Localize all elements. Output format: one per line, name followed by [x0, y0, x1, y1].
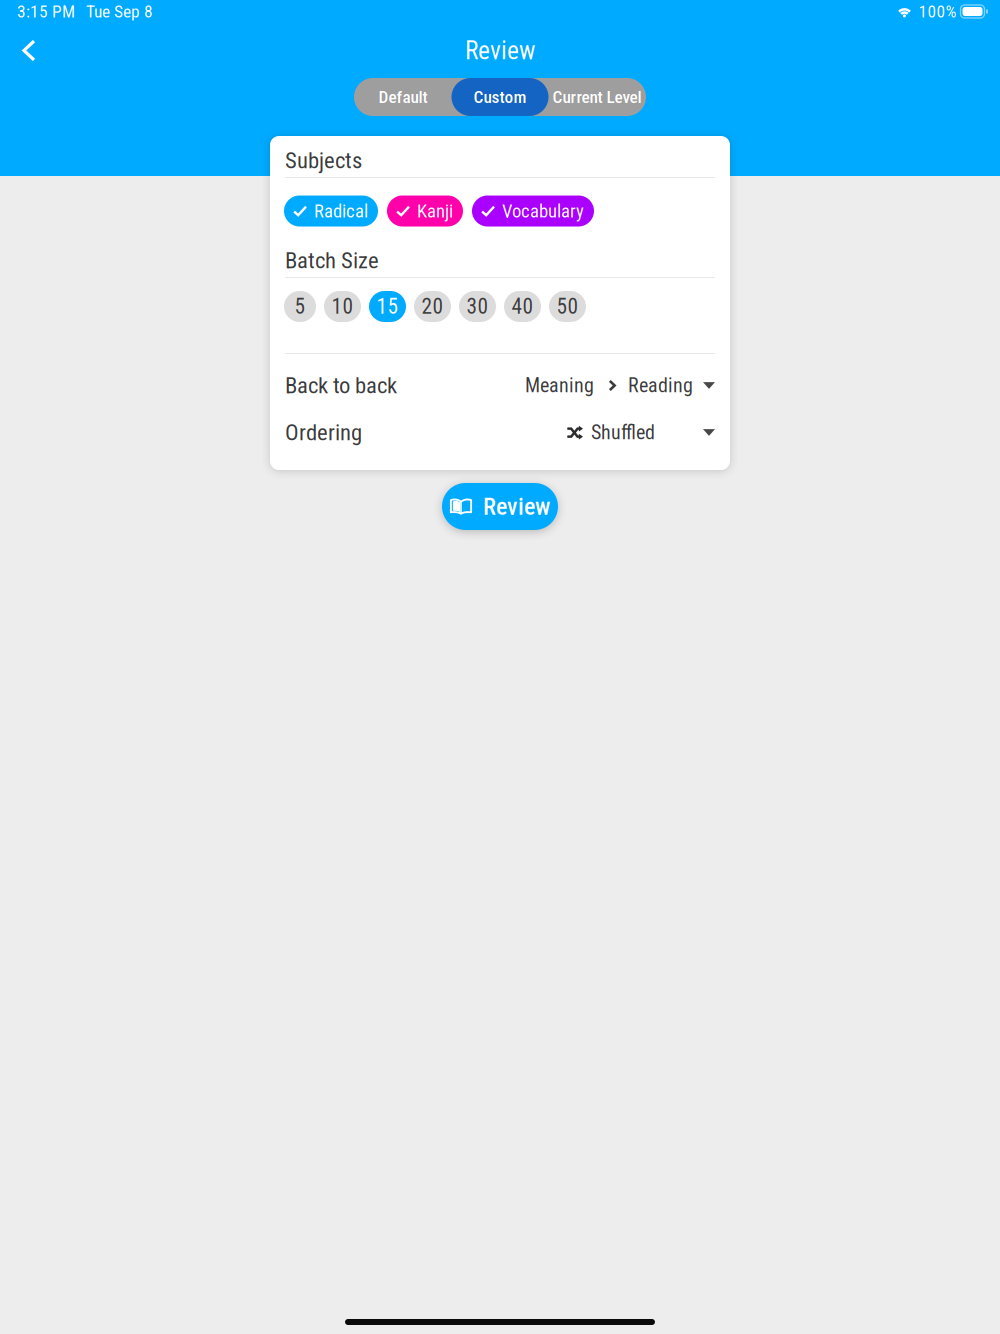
staticText: Custom [473, 87, 526, 107]
staticText: Review [465, 36, 535, 65]
staticText: Current Level [552, 87, 641, 107]
staticText: Kanji [417, 200, 453, 222]
button[interactable]: Radical [284, 195, 378, 226]
staticText: 50 [556, 294, 578, 319]
button[interactable]: 20 [414, 291, 451, 322]
button[interactable]: 15 [369, 291, 406, 322]
staticText: Reading [628, 374, 693, 397]
staticText: Subjects [285, 147, 362, 174]
staticText: Shuffled [591, 421, 655, 444]
staticText: 100% [918, 1, 956, 22]
staticText: Review [483, 492, 550, 520]
staticText: Meaning [525, 374, 594, 397]
button[interactable]: Review [442, 483, 558, 530]
button[interactable]: Ordering [270, 401, 730, 448]
staticText: Batch Size [285, 247, 379, 274]
staticText: Back to back [285, 372, 397, 399]
button[interactable]: 30 [459, 291, 496, 322]
button[interactable]: 5 [284, 291, 316, 322]
staticText: 10 [331, 294, 353, 319]
button[interactable]: 10 [324, 291, 361, 322]
button[interactable]: Vocabulary [472, 195, 594, 226]
staticText: Tue Sep 8 [86, 1, 153, 22]
button[interactable]: Back to back [270, 354, 730, 401]
staticText: Radical [314, 200, 368, 222]
staticText: 5 [294, 294, 305, 319]
staticText: 30 [466, 294, 488, 319]
staticText: Default [378, 87, 427, 107]
button[interactable]: Custom [451, 78, 548, 116]
button[interactable]: Back [7, 26, 51, 70]
staticText: 40 [511, 294, 533, 319]
button[interactable]: Kanji [387, 195, 463, 226]
staticText: Ordering [285, 419, 362, 446]
staticText: Vocabulary [502, 200, 584, 222]
staticText: 15 [376, 294, 398, 319]
button[interactable]: 50 [549, 291, 586, 322]
staticText: 20 [421, 294, 443, 319]
button[interactable]: Default [354, 78, 451, 116]
button[interactable]: Current Level [548, 78, 645, 116]
button[interactable]: 40 [504, 291, 541, 322]
staticText: 3:15 PM [17, 1, 75, 22]
